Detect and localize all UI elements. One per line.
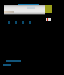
button[interactable]: Play — [46, 18, 51, 21]
